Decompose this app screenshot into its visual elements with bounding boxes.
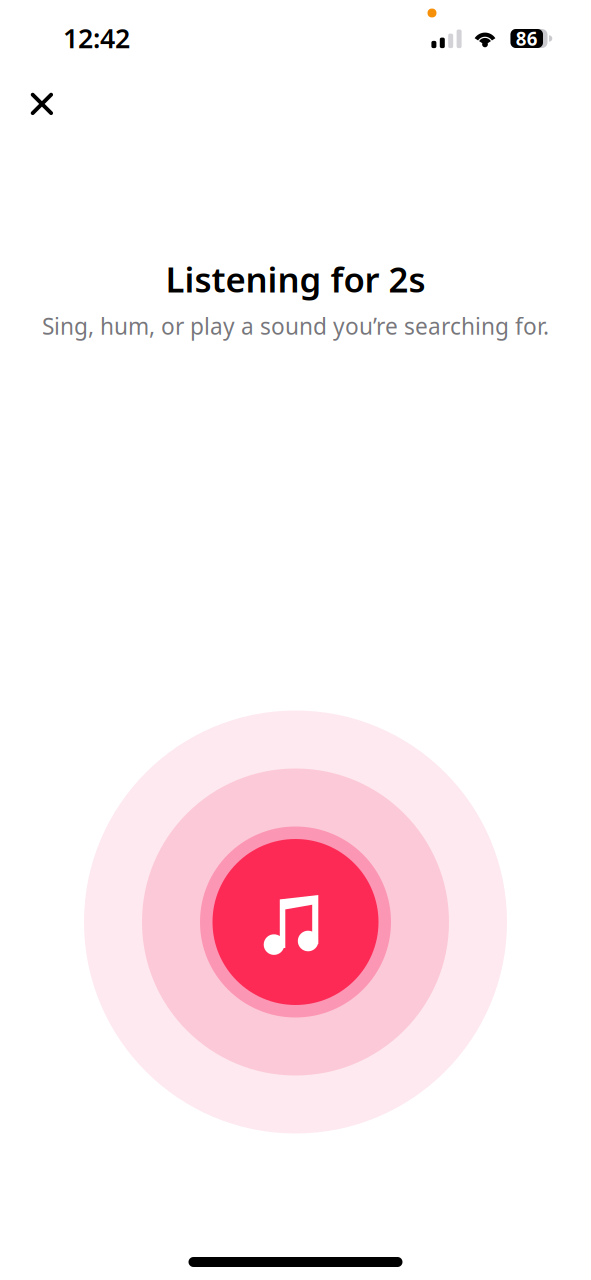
button[interactable]: Close — [19, 81, 65, 127]
staticText: 12:42 — [63, 20, 130, 56]
staticText: Sing, hum, or play a sound you’re search… — [42, 311, 549, 341]
staticText: Listening for 2s — [165, 256, 425, 302]
staticText: 86 — [516, 26, 538, 51]
button[interactable]: Listening, tap to stop — [84, 710, 507, 1133]
